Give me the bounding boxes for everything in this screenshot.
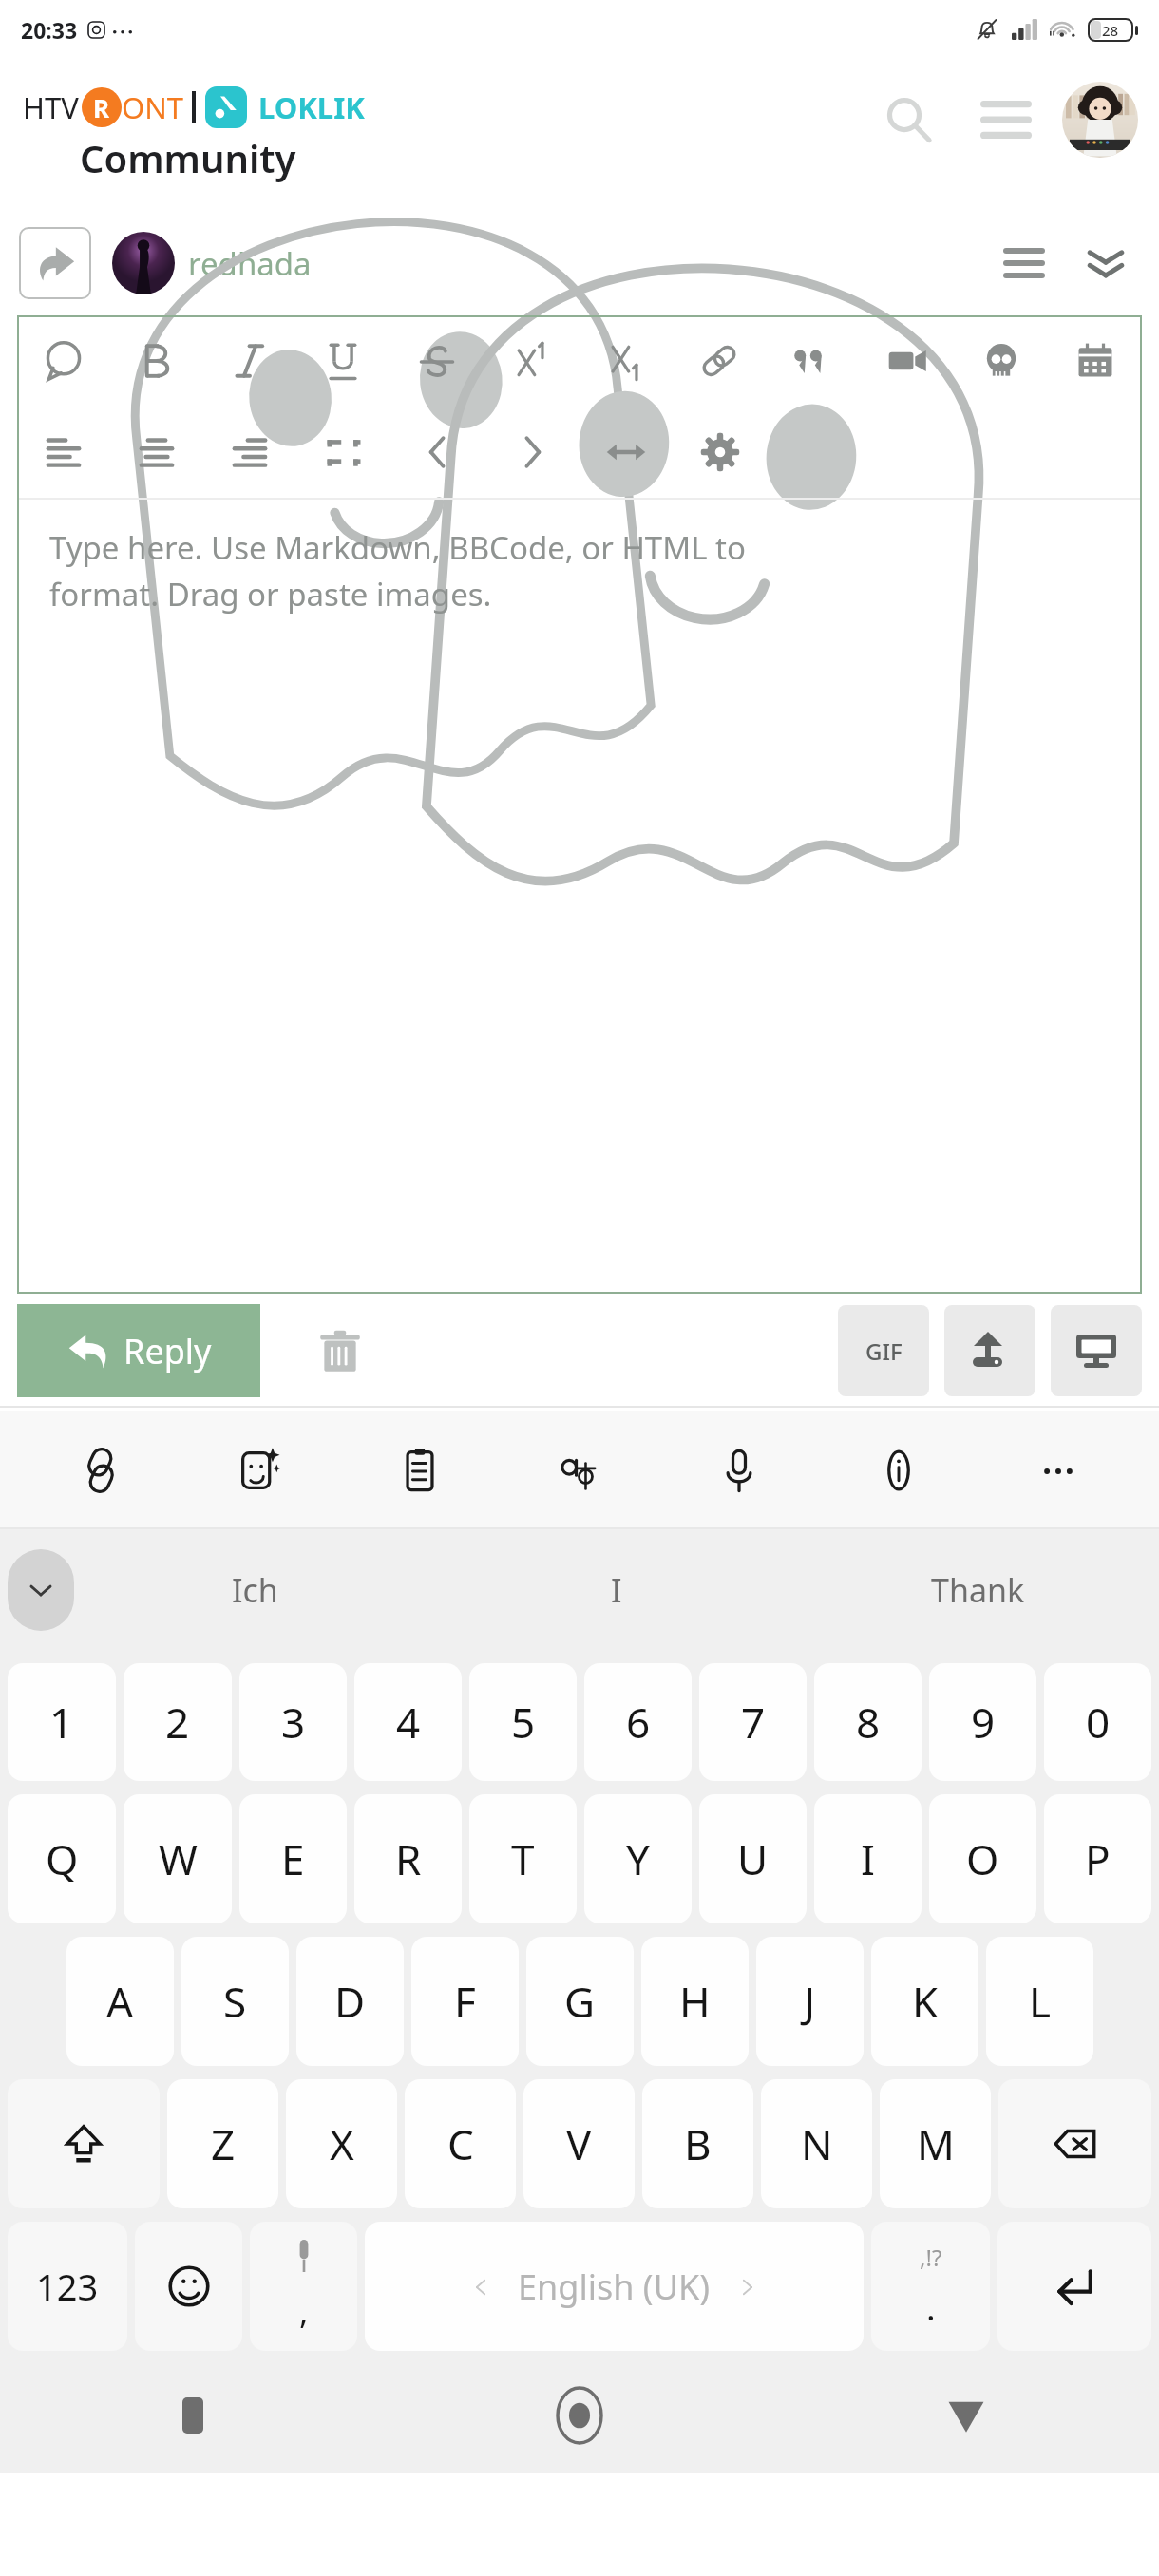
button[interactable]: Sticker [180,1411,340,1529]
button[interactable]: Delete draft [300,1311,380,1391]
button[interactable]: M [880,2079,991,2208]
button[interactable]: GIF [838,1305,929,1396]
button[interactable]: J [756,1937,864,2066]
staticText: 4 [396,1694,421,1751]
button[interactable]: Video [860,315,954,407]
button[interactable]: Reply [17,1304,260,1397]
button[interactable]: Enter [997,2222,1151,2351]
button[interactable]: Settings [673,407,767,498]
button[interactable]: Q [8,1794,116,1923]
button[interactable]: Align left [17,407,110,498]
button[interactable]: Underline [296,315,389,407]
button[interactable]: Punctuation [871,2222,990,2351]
button[interactable]: 2 [123,1663,232,1781]
button[interactable]: 7 [699,1663,807,1781]
button[interactable]: T [469,1794,577,1923]
button[interactable]: Horizontal rule [579,407,673,498]
button[interactable]: Shift [8,2079,160,2208]
button[interactable]: Thank [797,1529,1159,1651]
button[interactable]: Ich [74,1529,435,1651]
button[interactable]: Desktop view [1051,1305,1142,1396]
button[interactable]: Strikethrough [389,315,484,407]
button[interactable]: Quote [766,315,860,407]
button[interactable]: Translate [500,1411,659,1529]
button[interactable]: Link [672,315,766,407]
button[interactable]: K [871,1937,978,2066]
button[interactable]: U [699,1794,807,1923]
button[interactable]: Voice input [659,1411,819,1529]
button[interactable]: E [239,1794,347,1923]
button[interactable]: More options [978,1411,1138,1529]
button[interactable]: Next [484,407,579,498]
button[interactable]: I [814,1794,921,1923]
button[interactable]: Align right [203,407,296,498]
button[interactable]: Emoji [135,2222,242,2351]
button[interactable]: Align center [110,407,203,498]
button[interactable]: Spoiler [954,315,1048,407]
staticText: L [1029,1973,1052,2030]
button[interactable]: Recents [0,2358,386,2473]
button[interactable]: O [929,1794,1036,1923]
button[interactable]: Z [167,2079,278,2208]
button[interactable]: Expand suggestions [8,1549,74,1631]
button[interactable]: Backspace [998,2079,1151,2208]
button[interactable]: N [761,2079,872,2208]
button[interactable]: W [123,1794,232,1923]
button[interactable]: Post options [990,229,1058,297]
button[interactable]: Calendar [1048,315,1142,407]
button[interactable]: Italic [203,315,296,407]
button[interactable]: redhada [188,242,312,285]
button[interactable]: I [435,1529,797,1651]
button[interactable]: G [526,1937,634,2066]
button[interactable]: Clipboard [340,1411,500,1529]
button[interactable]: Previous [390,407,484,498]
button[interactable]: Menu [969,83,1043,157]
button[interactable]: A [66,1937,174,2066]
button[interactable]: 3 [239,1663,347,1781]
button[interactable]: C [405,2079,516,2208]
button[interactable]: Clipboard sticker [21,1411,180,1529]
button[interactable]: Jump to newest [1072,229,1140,297]
staticText: , [299,2287,309,2334]
button[interactable]: Subscript [578,315,672,407]
button[interactable]: S [181,1937,289,2066]
button[interactable]: Share [19,227,91,299]
button[interactable]: H [641,1937,749,2066]
staticText: 123 [36,2262,99,2311]
button[interactable]: F [411,1937,519,2066]
button[interactable]: Upload file [944,1305,1035,1396]
staticText: 20:33 [21,15,78,45]
button[interactable]: Comment [17,315,110,407]
staticText: I [611,1568,622,1612]
button[interactable]: 6 [584,1663,692,1781]
button[interactable]: D [296,1937,404,2066]
button[interactable]: 123 [8,2222,127,2351]
button[interactable]: English (UK) [365,2222,864,2351]
button[interactable]: Voice and comma [250,2222,357,2351]
button[interactable]: L [986,1937,1093,2066]
button[interactable]: X [286,2079,397,2208]
staticText: G [564,1973,596,2030]
staticText: I [861,1830,875,1887]
button[interactable]: Superscript [484,315,578,407]
button[interactable]: Profile [1062,82,1138,158]
button[interactable]: 1 [8,1663,116,1781]
button[interactable]: B [642,2079,753,2208]
button[interactable]: Y [584,1794,692,1923]
button[interactable]: Search [872,83,946,157]
button[interactable]: 4 [354,1663,462,1781]
button[interactable]: R [354,1794,462,1923]
button[interactable]: Back [772,2358,1159,2473]
button[interactable]: Bold [110,315,203,407]
button[interactable]: V [523,2079,635,2208]
button[interactable]: Home [386,2358,772,2473]
button[interactable]: 0 [1044,1663,1151,1781]
staticText: 0 [1086,1694,1111,1751]
button[interactable]: P [1044,1794,1151,1923]
button[interactable]: 5 [469,1663,577,1781]
staticText: R [395,1830,422,1887]
button[interactable]: Info [819,1411,978,1529]
button[interactable]: Collapse [296,407,390,498]
button[interactable]: 8 [814,1663,921,1781]
button[interactable]: 9 [929,1663,1036,1781]
